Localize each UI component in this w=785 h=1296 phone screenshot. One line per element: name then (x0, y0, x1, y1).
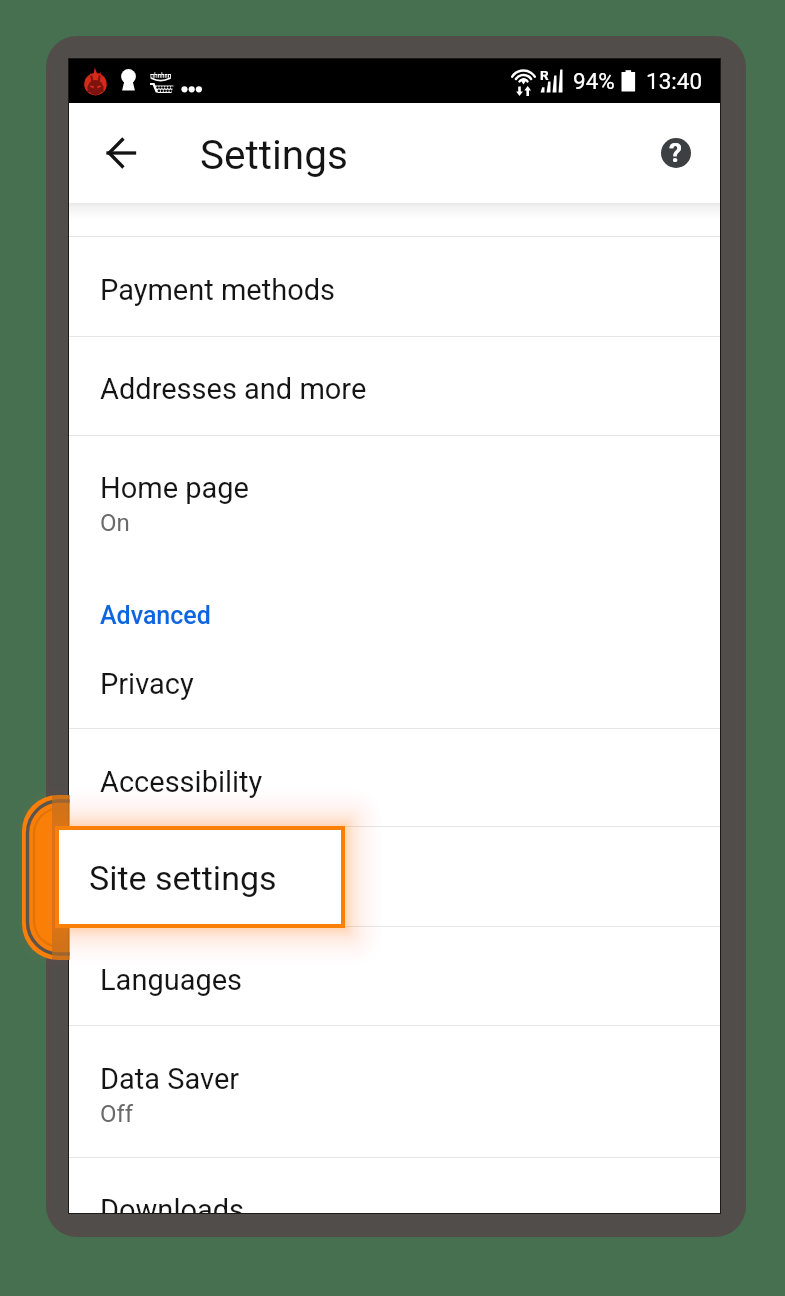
staticText: Site settings (89, 858, 277, 898)
staticText: 94% (573, 68, 615, 94)
button[interactable]: Data Saver (69, 1026, 720, 1157)
button[interactable]: Privacy (69, 627, 720, 728)
staticText: Accessibility (100, 765, 263, 799)
staticText: Languages (100, 963, 243, 997)
staticText: 13:40 (646, 68, 703, 94)
staticText: On (100, 509, 130, 537)
button[interactable]: Site settings (59, 830, 341, 924)
staticText: Advanced (100, 601, 211, 630)
staticText: Home page (100, 471, 249, 505)
button[interactable]: Home page (69, 436, 720, 560)
staticText: Data Saver (100, 1062, 240, 1096)
staticText: Off (100, 1100, 134, 1128)
button[interactable]: Help (658, 135, 694, 171)
staticText: Downloads (100, 1193, 245, 1213)
staticText: R (540, 67, 549, 83)
staticText: Settings (200, 131, 348, 178)
button[interactable]: Payment methods (69, 237, 720, 336)
button[interactable]: Back (98, 129, 146, 177)
staticText: Site settings (100, 863, 260, 897)
button[interactable]: Downloads (69, 1158, 720, 1213)
button[interactable]: Site settings (69, 827, 720, 926)
staticText: Addresses and more (100, 372, 367, 406)
button[interactable]: Advanced (69, 560, 720, 627)
staticText: Payment methods (100, 273, 336, 307)
button[interactable]: Languages (69, 927, 720, 1025)
staticText: ? (669, 138, 682, 168)
button[interactable]: Addresses and more (69, 337, 720, 435)
button[interactable]: Accessibility (69, 729, 720, 826)
staticText: Privacy (100, 667, 194, 701)
